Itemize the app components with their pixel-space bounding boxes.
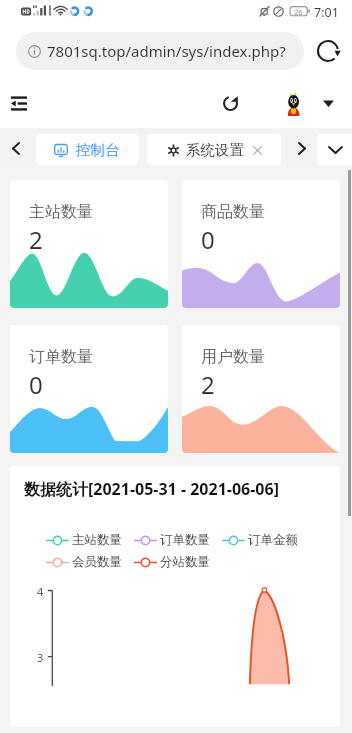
button[interactable]: 7801sq.top/admin/sys/index.php?: [16, 32, 304, 70]
staticText: 0: [29, 368, 43, 401]
button[interactable]: 控制台: [36, 134, 138, 165]
staticText: 会员数量: [72, 554, 122, 570]
staticText: 系统设置: [186, 141, 244, 159]
button[interactable]: More options: [315, 90, 342, 117]
button[interactable]: Account: [278, 88, 309, 119]
staticText: 分站数量: [160, 554, 210, 570]
staticText: 2: [201, 368, 215, 401]
button[interactable]: Reload: [304, 24, 352, 78]
button[interactable]: 用户数量: [182, 325, 340, 453]
staticText: 26: [294, 7, 303, 17]
staticText: 订单数量: [160, 532, 210, 548]
staticText: 2: [29, 223, 43, 256]
staticText: 7801sq.top/admin/sys/index.php?: [47, 41, 286, 61]
staticText: 订单金额: [248, 532, 298, 548]
staticText: 主站数量: [29, 202, 93, 222]
button[interactable]: Next tab: [289, 128, 315, 168]
button[interactable]: Refresh: [212, 85, 249, 122]
button[interactable]: 系统设置: [147, 134, 281, 165]
staticText: 数据统计[2021-05-31 - 2021-06-06]: [24, 478, 279, 500]
button[interactable]: 商品数量: [182, 180, 340, 308]
button[interactable]: 订单数量: [10, 325, 168, 453]
staticText: 3: [37, 650, 44, 665]
staticText: 7:01: [314, 4, 339, 21]
staticText: 控制台: [76, 141, 120, 159]
staticText: 用户数量: [201, 347, 265, 367]
staticText: 主站数量: [72, 532, 122, 548]
staticText: 商品数量: [201, 202, 265, 222]
staticText: 4: [37, 584, 44, 599]
button[interactable]: Show all tabs: [318, 134, 352, 165]
staticText: 0: [201, 223, 215, 256]
staticText: 订单数量: [29, 347, 93, 367]
button[interactable]: Menu: [2, 87, 35, 120]
button[interactable]: 主站数量: [10, 180, 168, 308]
button[interactable]: Previous tab: [3, 128, 29, 168]
